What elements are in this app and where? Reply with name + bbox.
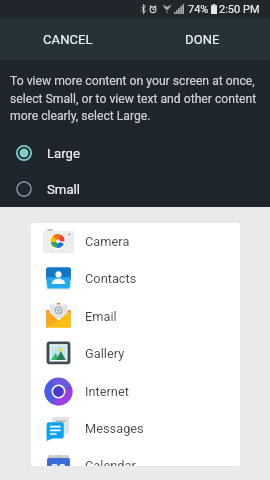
staticText: Large xyxy=(47,146,81,161)
staticText: 2:50 PM xyxy=(219,3,260,16)
staticText: DONE xyxy=(185,32,220,47)
staticText: Internet xyxy=(85,384,129,399)
button[interactable]: Large xyxy=(0,135,270,171)
staticText: 30 xyxy=(51,461,66,466)
staticText: Messages xyxy=(85,421,144,436)
staticText: Camera xyxy=(85,234,130,249)
button[interactable]: Contacts xyxy=(31,260,240,297)
staticText: Email xyxy=(85,309,117,324)
button[interactable]: DONE xyxy=(135,18,270,60)
staticText: CANCEL xyxy=(43,32,93,47)
staticText: Gallery xyxy=(85,346,125,361)
button[interactable]: Messages xyxy=(31,410,240,447)
button[interactable]: Small xyxy=(0,171,270,207)
button[interactable]: Gallery xyxy=(31,335,240,372)
staticText: Small xyxy=(47,182,80,197)
button[interactable]: CANCEL xyxy=(0,18,135,60)
staticText: To view more content on your screen at o… xyxy=(10,74,258,123)
button[interactable]: Internet xyxy=(31,373,240,410)
button[interactable]: Email xyxy=(31,298,240,335)
staticText: Calendar xyxy=(85,458,136,466)
button[interactable]: 30 xyxy=(31,447,240,466)
staticText: Contacts xyxy=(85,271,137,286)
staticText: 74% xyxy=(188,3,209,16)
button[interactable]: Camera xyxy=(31,223,240,260)
